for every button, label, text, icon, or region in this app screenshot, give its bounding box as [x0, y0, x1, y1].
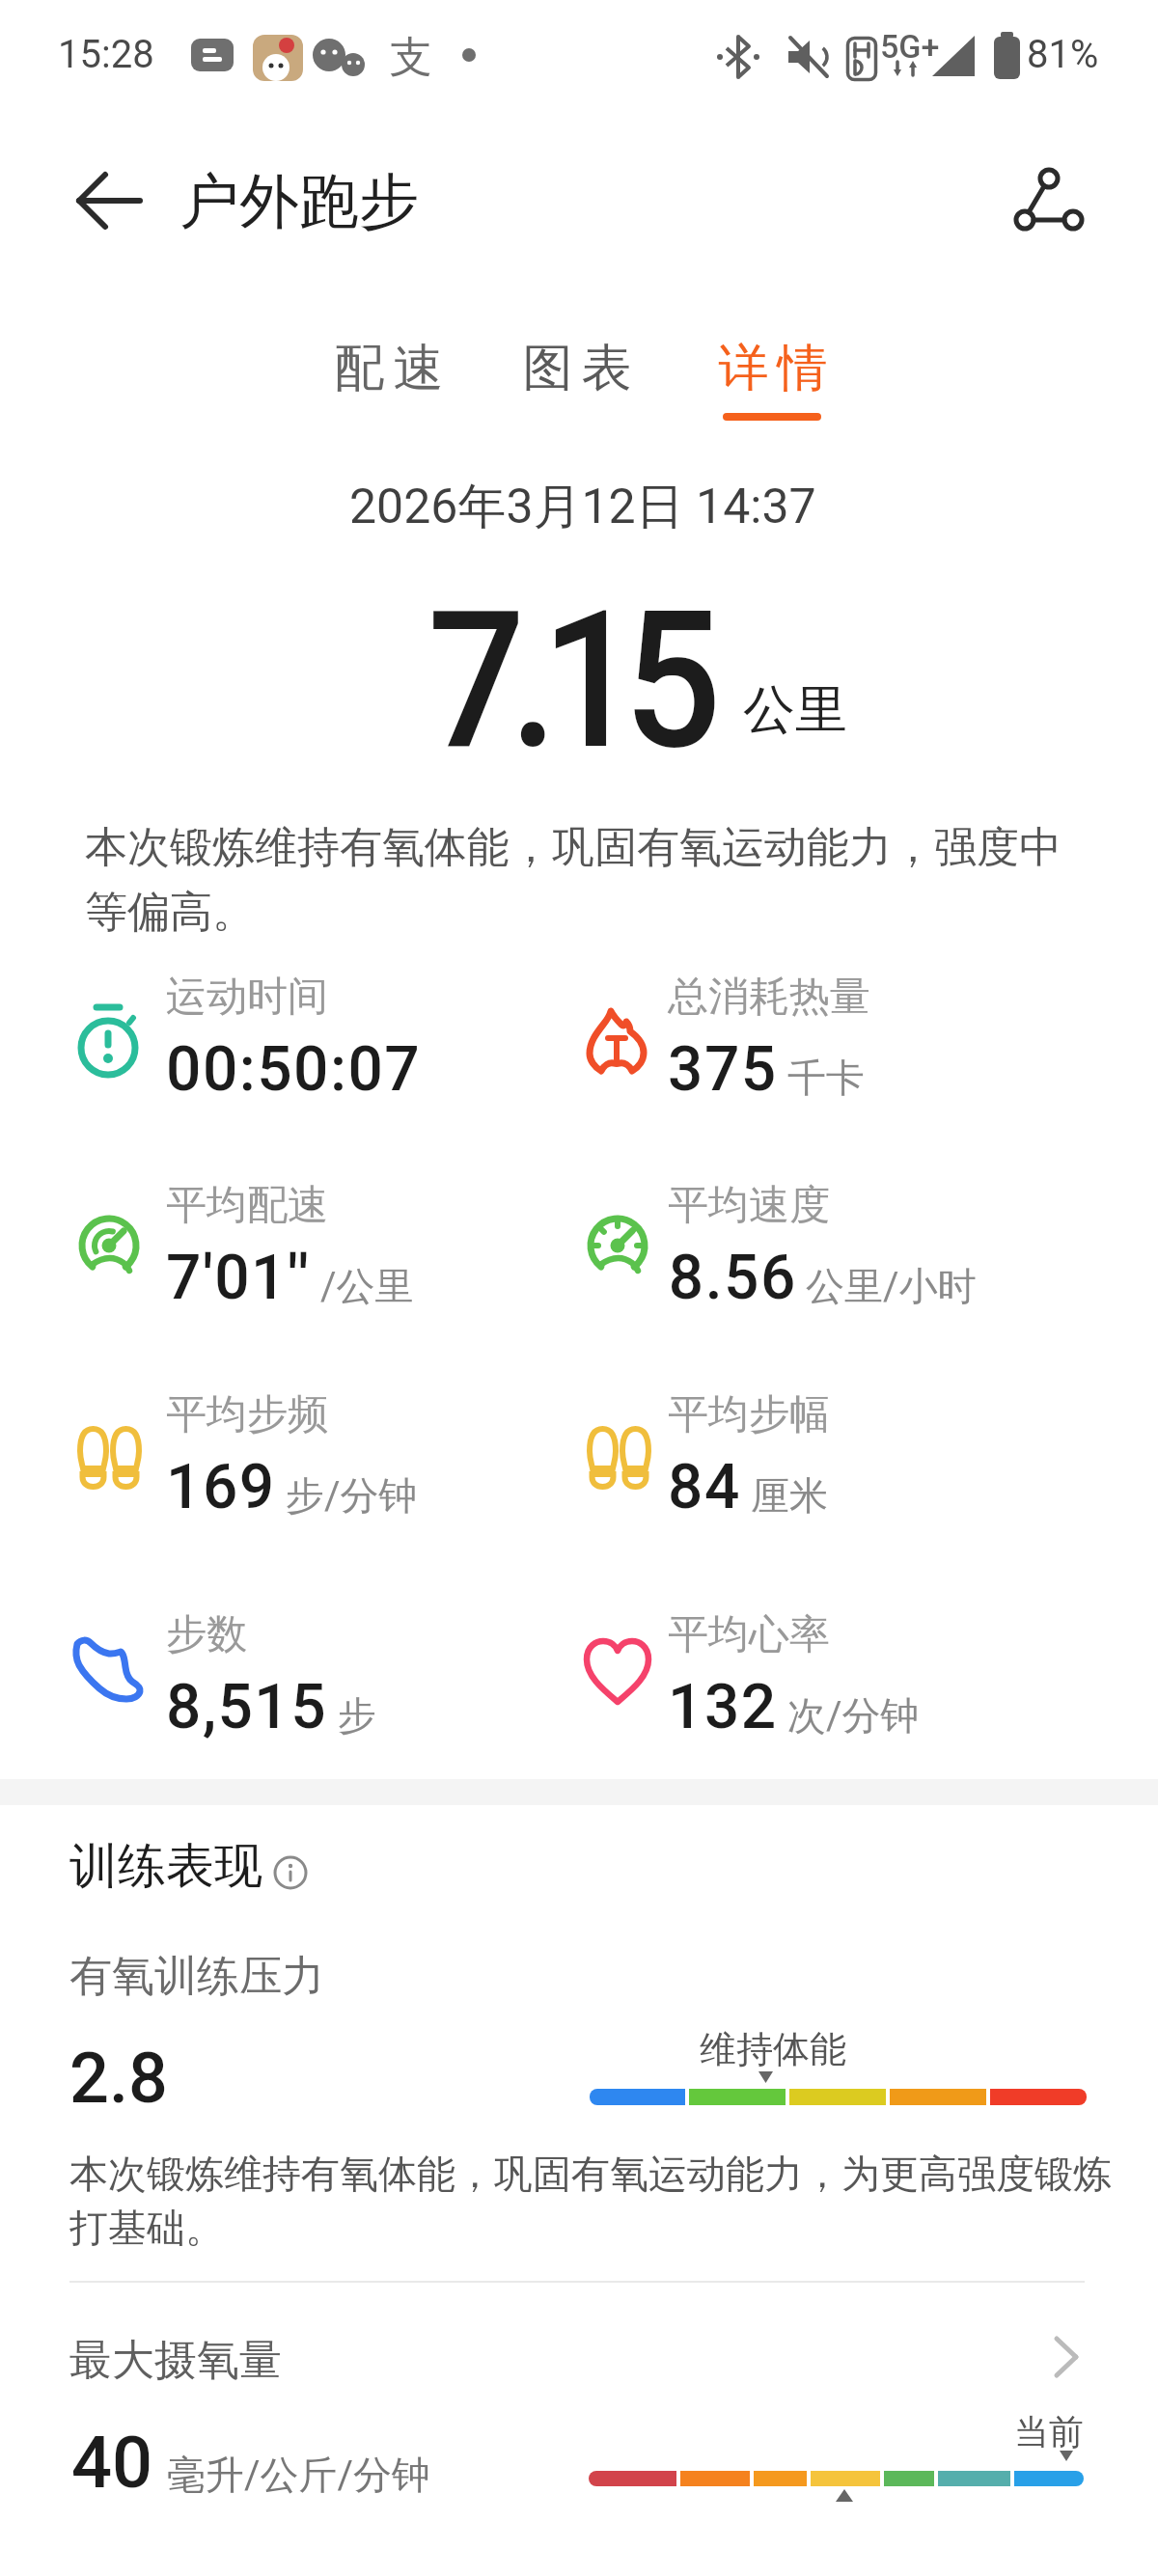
staticText: 7'01'' [166, 1242, 311, 1314]
staticText: 有氧训练压力 [69, 1950, 324, 2003]
staticText: 训练表现 [69, 1836, 262, 1897]
staticText: 运动时间 [166, 972, 328, 1023]
staticText: 平均配速 [166, 1180, 328, 1231]
staticText: 40 [71, 2421, 153, 2505]
staticText: 步/分钟 [286, 1471, 418, 1520]
staticText: 00:50:07 [166, 1033, 422, 1106]
staticText: 户外跑步 [179, 164, 419, 239]
button[interactable]: 图表 [520, 337, 638, 400]
staticText: 步数 [166, 1609, 247, 1660]
button[interactable] [0, 2311, 1158, 2417]
staticText: 169 [166, 1451, 276, 1523]
staticText: 本次锻炼维持有氧体能，巩固有氧运动能力，强度中 等偏高。 [85, 821, 1061, 939]
button[interactable]: 配速 [520, 337, 638, 400]
staticText: 次/分钟 [787, 1691, 920, 1740]
staticText: 毫升/公斤/分钟 [167, 2451, 431, 2499]
staticText: 81% [1027, 32, 1099, 77]
staticText: 15:28 [58, 32, 154, 77]
staticText: 维持体能 [700, 2026, 846, 2072]
staticText: 8,515 [166, 1671, 328, 1743]
staticText: 当前 [1014, 2410, 1084, 2453]
button[interactable] [994, 150, 1100, 256]
staticText: 7.15 [427, 570, 706, 792]
button[interactable]: 详情 [520, 337, 638, 400]
button[interactable] [273, 1853, 312, 1892]
staticText: 千卡 [787, 1054, 865, 1102]
staticText: 平均步幅 [668, 1389, 830, 1440]
staticText: 公里/小时 [806, 1262, 977, 1310]
staticText: 支 [390, 31, 432, 84]
staticText: 最大摄氧量 [69, 2334, 282, 2387]
staticText: 5G+ [880, 27, 940, 66]
staticText: 2026年3月12日 14:37 [349, 477, 816, 537]
staticText: 厘米 [751, 1471, 828, 1520]
staticText: 2.8 [69, 2038, 168, 2119]
staticText: 步 [338, 1691, 376, 1740]
button[interactable] [63, 159, 159, 246]
staticText: 132 [668, 1671, 778, 1743]
staticText: 平均步频 [166, 1389, 328, 1440]
staticText: 总消耗热量 [668, 972, 870, 1023]
staticText: 84 [668, 1451, 741, 1523]
staticText: 375 [668, 1033, 778, 1106]
staticText: 平均心率 [668, 1609, 830, 1660]
staticText: /公里 [320, 1262, 414, 1310]
staticText: 本次锻炼维持有氧体能，巩固有氧运动能力，为更高强度锻炼 打基础。 [69, 2150, 1112, 2253]
staticText: 8.56 [668, 1242, 796, 1314]
staticText: 平均速度 [668, 1180, 830, 1231]
staticText: 公里 [743, 677, 847, 743]
